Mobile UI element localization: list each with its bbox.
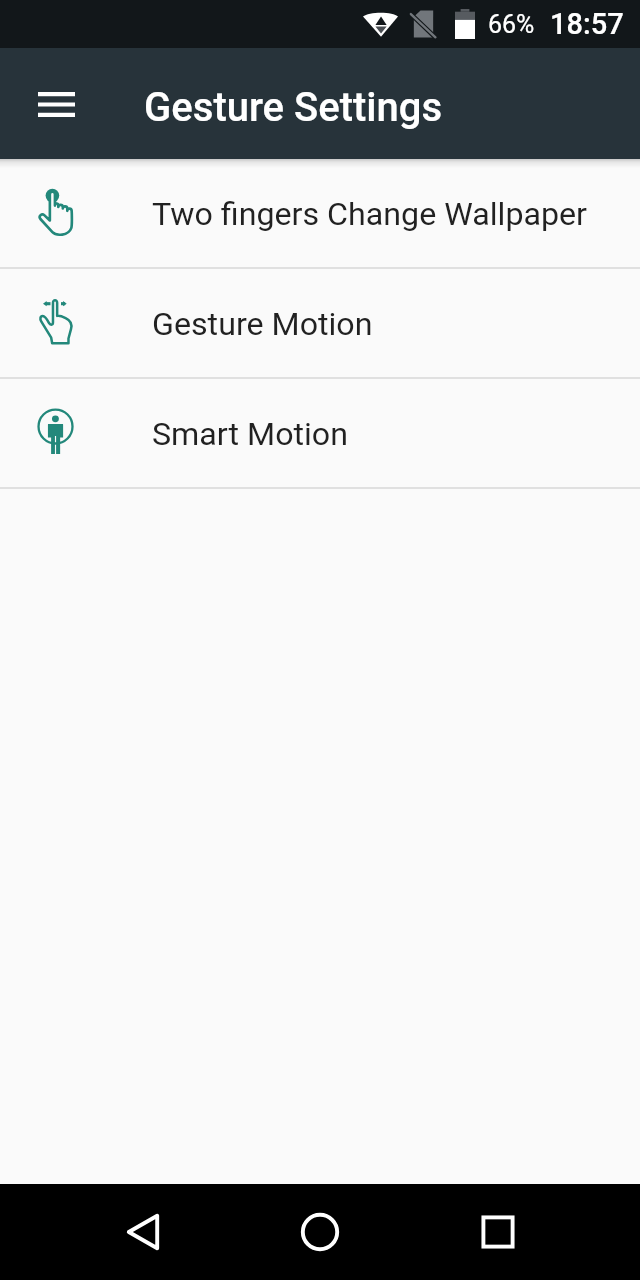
button[interactable]: Smart Motion — [0, 379, 640, 487]
staticText: Gesture Motion — [152, 305, 373, 343]
button[interactable]: Back — [95, 1184, 191, 1280]
button[interactable]: Two fingers Change Wallpaper — [0, 159, 640, 267]
staticText: 66% — [488, 10, 535, 39]
button[interactable]: Recent apps — [450, 1184, 546, 1280]
button[interactable]: Home — [272, 1184, 368, 1280]
staticText: Smart Motion — [152, 415, 349, 453]
button[interactable]: Open navigation menu — [12, 60, 100, 148]
staticText: Gesture Settings — [144, 84, 443, 131]
staticText: Two fingers Change Wallpaper — [152, 195, 588, 233]
staticText: 18:57 — [550, 7, 624, 41]
button[interactable]: Gesture Motion — [0, 269, 640, 377]
